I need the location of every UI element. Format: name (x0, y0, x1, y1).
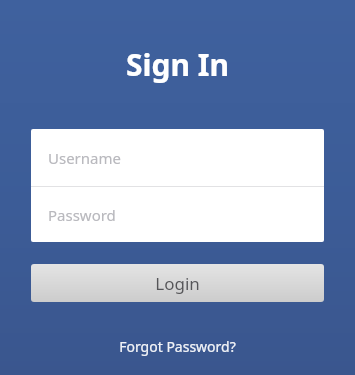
button[interactable]: Username (31, 129, 324, 186)
staticText: Password (48, 205, 116, 225)
staticText: Login (155, 272, 200, 295)
button[interactable]: Password (31, 187, 324, 242)
staticText: Username (48, 148, 121, 168)
staticText: Forgot Password? (119, 337, 236, 356)
staticText: Sign In (126, 44, 229, 85)
button[interactable]: Forgot Password (109, 333, 246, 360)
button[interactable]: Login (31, 264, 324, 302)
